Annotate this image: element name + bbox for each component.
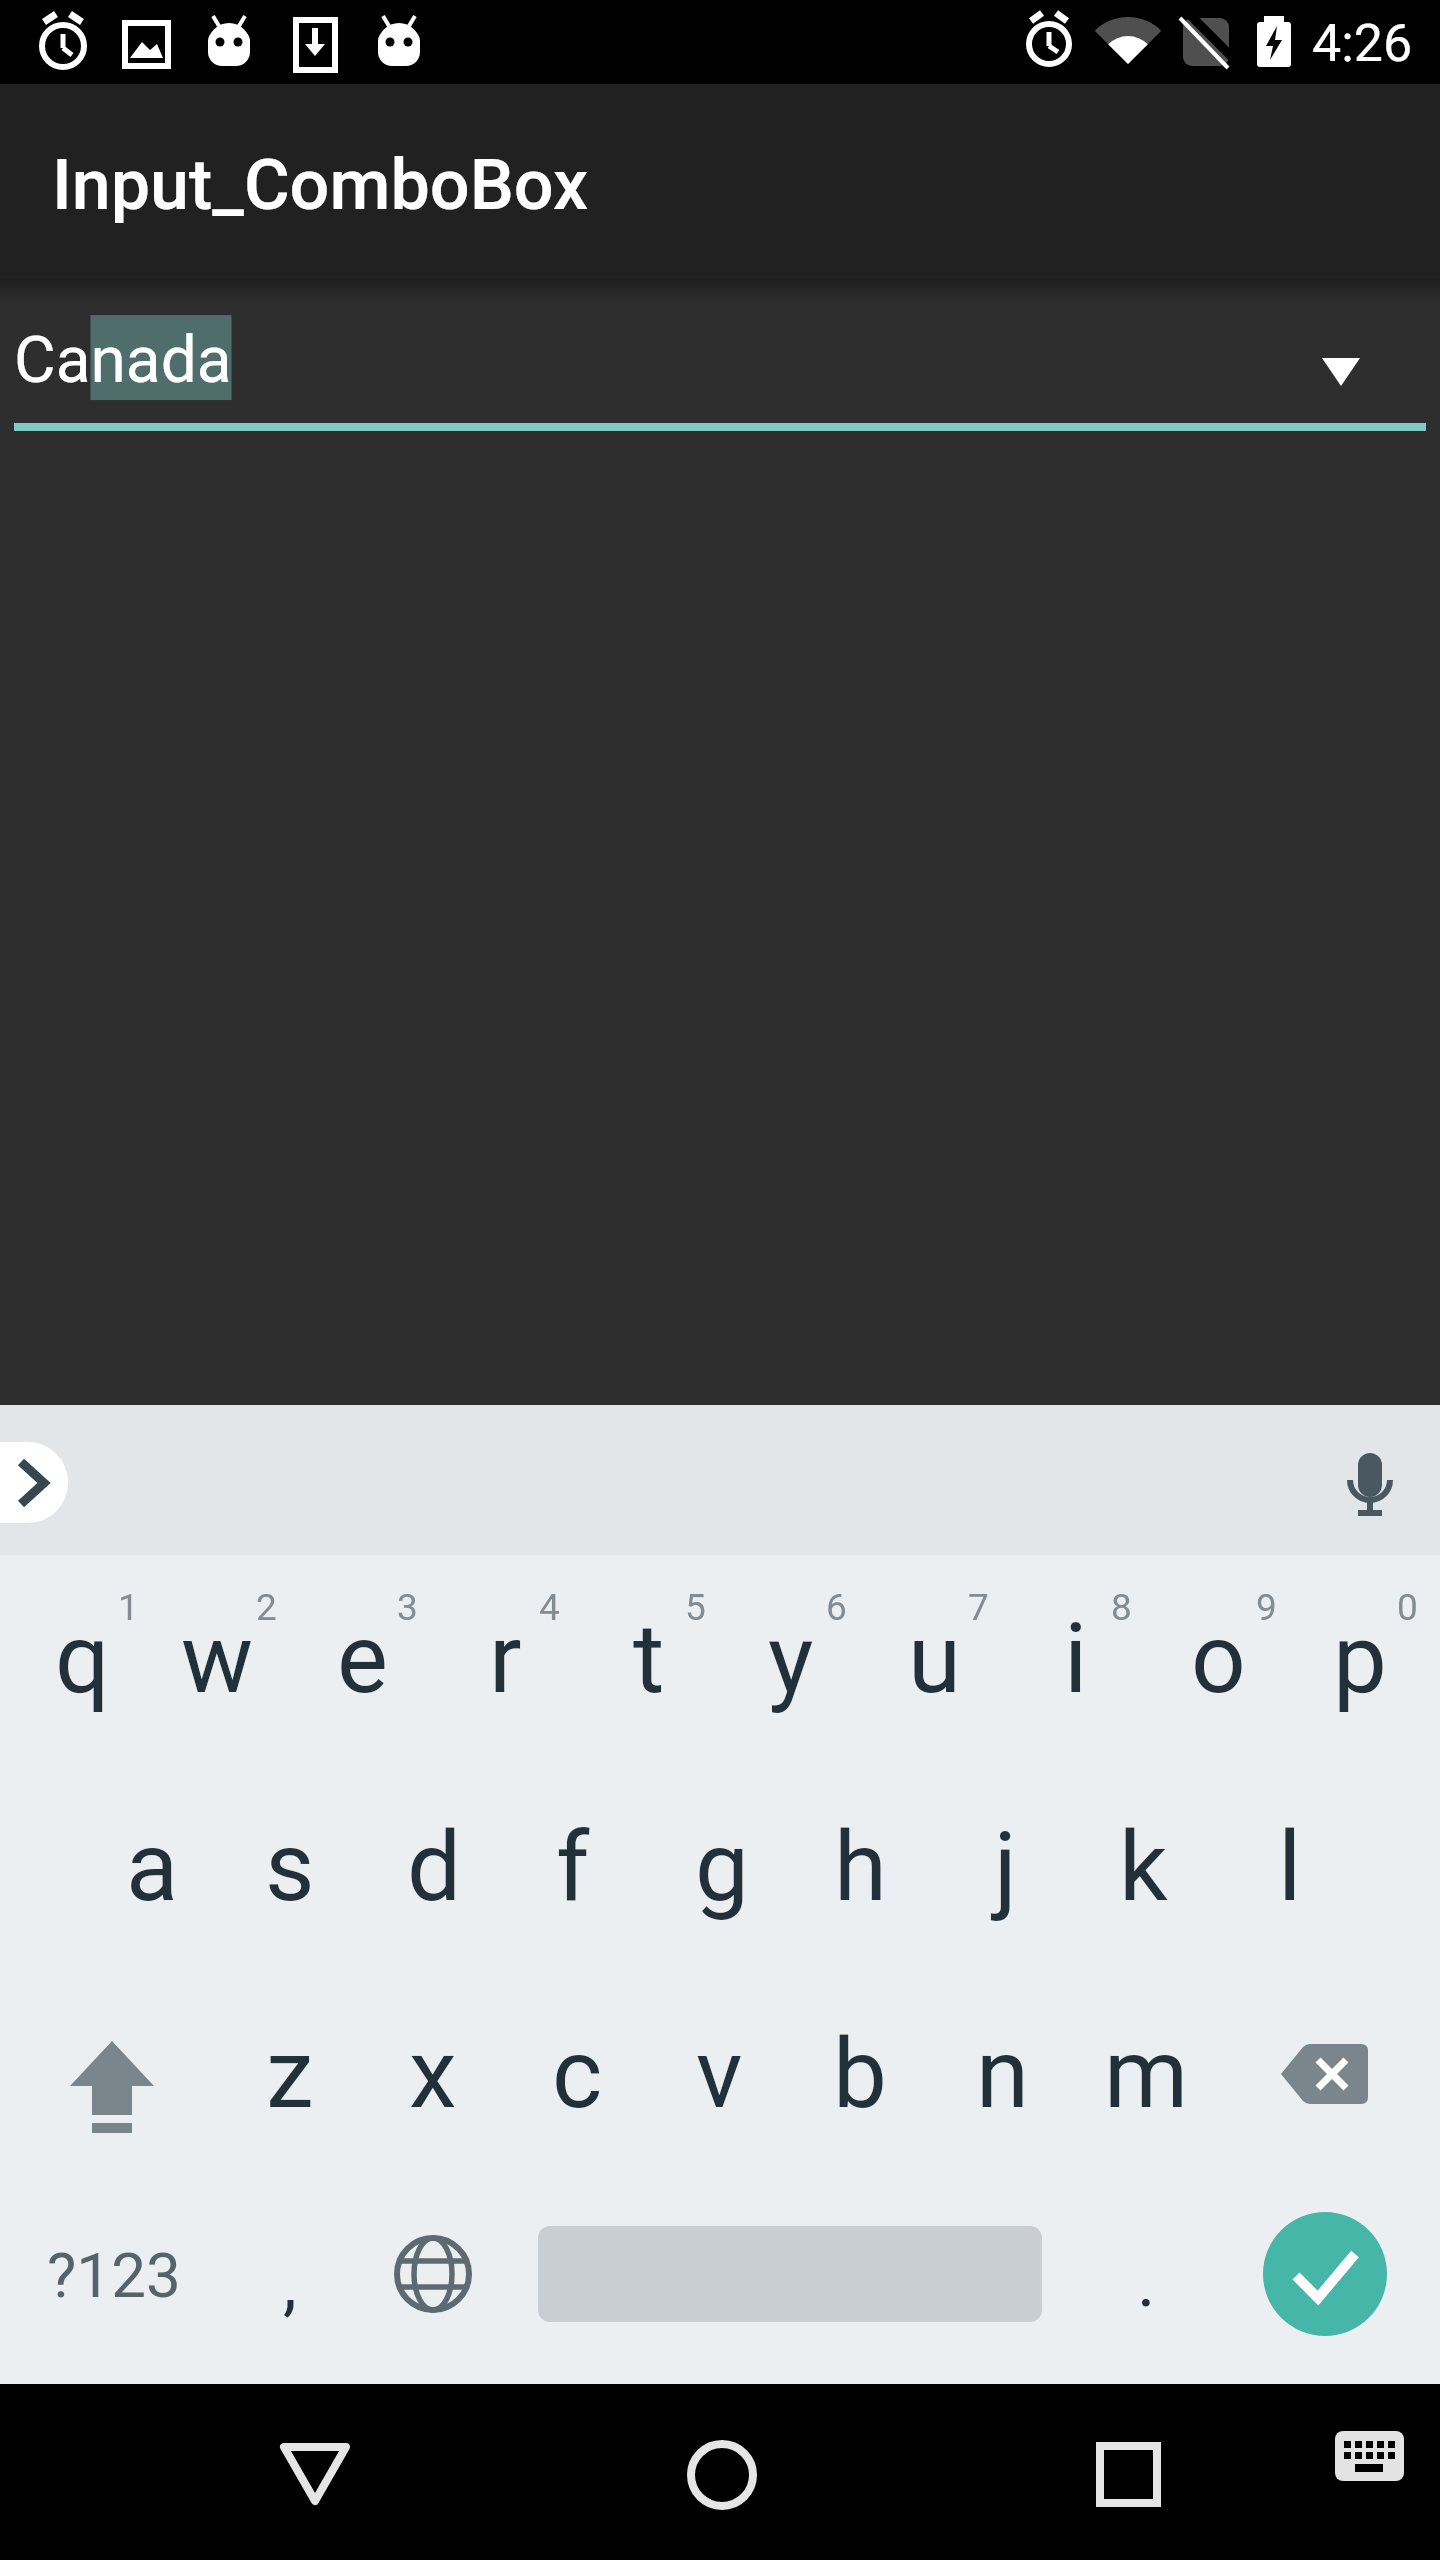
staticText: ?123 <box>47 2239 181 2312</box>
staticText: l <box>1278 1811 1302 1924</box>
button[interactable]: h <box>790 1772 930 1962</box>
button[interactable]: r <box>435 1564 575 1754</box>
button[interactable]: a <box>82 1772 222 1962</box>
staticText: 3 <box>397 1586 418 1629</box>
staticText: k <box>1119 1811 1168 1924</box>
staticText: 2 <box>256 1586 277 1629</box>
staticText: 6 <box>826 1586 847 1629</box>
button[interactable]: 9 <box>1236 1577 1296 1637</box>
staticText: y <box>768 1603 814 1716</box>
button[interactable]: w <box>147 1564 287 1754</box>
staticText: p <box>1333 1603 1387 1716</box>
staticText: q <box>55 1603 110 1716</box>
button[interactable] <box>1066 2414 1190 2538</box>
staticText: z <box>266 2018 314 2131</box>
button[interactable]: z <box>220 1979 360 2169</box>
staticText: n <box>976 2018 1030 2131</box>
staticText: 7 <box>968 1586 989 1629</box>
staticText: u <box>908 1603 961 1716</box>
button[interactable]: t <box>579 1564 719 1754</box>
staticText: 1 <box>118 1586 139 1629</box>
button[interactable]: ?123 <box>29 2180 199 2370</box>
button[interactable]: m <box>1076 1979 1216 2169</box>
button[interactable]: 7 <box>948 1577 1008 1637</box>
button[interactable]: 4 <box>519 1577 579 1637</box>
button[interactable] <box>373 2214 493 2334</box>
button[interactable] <box>1250 1985 1410 2165</box>
staticText: 4 <box>539 1586 560 1629</box>
button[interactable]: p <box>1290 1564 1430 1754</box>
staticText: 8 <box>1111 1586 1132 1629</box>
button[interactable] <box>1338 1445 1402 1525</box>
button[interactable]: 8 <box>1091 1577 1151 1637</box>
button[interactable]: u <box>864 1564 1004 1754</box>
button[interactable] <box>660 2414 784 2538</box>
staticText: 0 <box>1397 1586 1418 1629</box>
staticText: e <box>337 1603 388 1716</box>
button[interactable]: o <box>1148 1564 1288 1754</box>
button[interactable] <box>30 1985 200 2165</box>
staticText: . <box>1137 2241 1156 2323</box>
staticText: b <box>833 2018 887 2131</box>
button[interactable]: s <box>220 1772 360 1962</box>
button[interactable] <box>255 2414 379 2538</box>
button[interactable]: x <box>363 1979 503 2169</box>
button[interactable]: 5 <box>665 1577 725 1637</box>
button[interactable]: j <box>935 1772 1075 1962</box>
button[interactable]: v <box>649 1979 789 2169</box>
button[interactable]: n <box>933 1979 1073 2169</box>
staticText: a <box>126 1811 179 1924</box>
button[interactable]: y <box>721 1564 861 1754</box>
staticText: x <box>409 2018 457 2131</box>
staticText: t <box>633 1603 665 1716</box>
button[interactable]: b <box>790 1979 930 2169</box>
button[interactable]: l <box>1220 1772 1360 1962</box>
staticText: m <box>1104 2018 1189 2131</box>
button[interactable]: q <box>12 1564 152 1754</box>
button[interactable]: 0 <box>1377 1577 1437 1637</box>
staticText: d <box>407 1811 462 1924</box>
button[interactable]: . <box>1101 2222 1191 2342</box>
button[interactable]: c <box>507 1979 647 2169</box>
staticText: h <box>834 1811 887 1924</box>
button[interactable]: 2 <box>236 1577 296 1637</box>
button[interactable] <box>1263 2212 1387 2336</box>
staticText: Canada <box>14 323 232 398</box>
staticText: r <box>489 1603 522 1716</box>
staticText: c <box>552 2018 603 2131</box>
button[interactable] <box>0 1442 68 1523</box>
staticText: 9 <box>1256 1586 1277 1629</box>
button[interactable]: , <box>245 2224 335 2344</box>
button[interactable]: e <box>292 1564 432 1754</box>
button[interactable]: g <box>652 1772 792 1962</box>
staticText: 4:26 <box>1312 13 1413 74</box>
staticText: w <box>181 1603 254 1716</box>
button[interactable]: 3 <box>377 1577 437 1637</box>
button[interactable]: d <box>364 1772 504 1962</box>
button[interactable]: i <box>1006 1564 1146 1754</box>
staticText: g <box>695 1811 749 1924</box>
button[interactable] <box>1325 2424 1415 2494</box>
staticText: Input_ComboBox <box>52 144 589 226</box>
staticText: , <box>283 2243 297 2325</box>
staticText: f <box>556 1811 590 1924</box>
staticText: s <box>265 1811 315 1924</box>
staticText: 5 <box>685 1586 706 1629</box>
staticText: v <box>696 2018 743 2131</box>
staticText: j <box>994 1811 1017 1924</box>
staticText: i <box>1064 1603 1088 1716</box>
staticText: o <box>1191 1603 1246 1716</box>
button[interactable]: 6 <box>806 1577 866 1637</box>
button[interactable]: 1 <box>98 1577 158 1637</box>
button[interactable]: Canada <box>0 299 1440 439</box>
button[interactable]: f <box>503 1772 643 1962</box>
button[interactable]: k <box>1073 1772 1213 1962</box>
